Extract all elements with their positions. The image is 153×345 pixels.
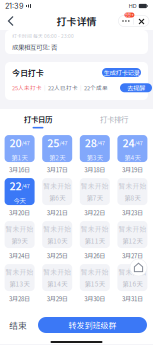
staticText: 生成打卡记录 bbox=[103, 68, 139, 77]
staticText: 22个成果 bbox=[84, 84, 108, 92]
staticText: 3月19日 bbox=[122, 165, 143, 174]
staticText: 99+ bbox=[125, 12, 134, 18]
button[interactable]: 20 bbox=[5, 139, 35, 178]
button[interactable]: 暂未开始 bbox=[5, 225, 35, 264]
staticText: 22 bbox=[10, 178, 22, 193]
button[interactable]: 25 bbox=[42, 139, 72, 178]
staticText: 结束 bbox=[9, 319, 27, 331]
staticText: 暂未开始 bbox=[6, 267, 34, 277]
staticText: 第12天 bbox=[122, 236, 142, 245]
staticText: 3月25日 bbox=[47, 251, 68, 260]
staticText: 3月27日 bbox=[122, 251, 143, 260]
staticText: 打卡日历 bbox=[24, 113, 52, 124]
button[interactable]: 去提醒 bbox=[120, 83, 152, 92]
staticText: 第16天 bbox=[122, 279, 142, 288]
staticText: /47 bbox=[59, 138, 67, 147]
staticText: 3月21日 bbox=[47, 208, 68, 217]
staticText: 3月23日 bbox=[122, 208, 143, 217]
staticText: 第10天 bbox=[47, 236, 67, 245]
staticText: 第11天 bbox=[85, 236, 105, 245]
staticText: 22人已打卡 bbox=[48, 84, 78, 92]
button[interactable]: 生成打卡记录 bbox=[102, 68, 141, 77]
staticText: 20 bbox=[10, 135, 22, 150]
button[interactable]: 暂未开始 bbox=[80, 268, 110, 307]
staticText: 暂未开始 bbox=[118, 181, 146, 191]
staticText: /47 bbox=[22, 181, 30, 190]
staticText: 第1天 bbox=[12, 153, 28, 162]
staticText: /47 bbox=[22, 138, 30, 147]
staticText: 暂未开始 bbox=[6, 224, 34, 234]
staticText: 3月29日 bbox=[47, 294, 68, 303]
staticText: 暂未开始 bbox=[81, 224, 109, 234]
button[interactable]: 打卡排行 bbox=[76, 109, 152, 128]
staticText: 暂未开始 bbox=[118, 267, 146, 277]
staticText: 24 bbox=[122, 135, 134, 150]
staticText: 21:39 bbox=[5, 2, 24, 10]
staticText: 3月28日 bbox=[9, 294, 30, 303]
staticText: 第15天 bbox=[85, 279, 105, 288]
staticText: 第4天 bbox=[124, 153, 140, 162]
button[interactable]: Close bbox=[134, 15, 149, 26]
staticText: 打卡排行 bbox=[100, 113, 128, 124]
staticText: 3月26日 bbox=[84, 251, 105, 260]
button[interactable]: 暂未开始 bbox=[5, 268, 35, 307]
button[interactable]: 暂未开始 bbox=[42, 268, 72, 307]
staticText: HD bbox=[129, 3, 137, 9]
staticText: 3月30日 bbox=[84, 294, 105, 303]
button[interactable]: 转发到班级群 bbox=[38, 317, 147, 333]
staticText: 3月31日 bbox=[122, 294, 143, 303]
staticText: 今日打卡 bbox=[12, 67, 44, 78]
staticText: /47 bbox=[97, 138, 105, 147]
staticText: 成果相互可见: 否 bbox=[12, 42, 57, 52]
staticText: 暂未开始 bbox=[43, 224, 71, 234]
staticText: 暂未开始 bbox=[81, 181, 109, 191]
staticText: | bbox=[44, 84, 46, 92]
staticText: 暂未开始 bbox=[118, 224, 146, 234]
staticText: 3月16日 bbox=[9, 165, 30, 174]
staticText: 去提醒 bbox=[127, 83, 145, 92]
staticText: | bbox=[80, 84, 82, 92]
staticText: 转发到班级群 bbox=[68, 319, 116, 331]
staticText: 3月17日 bbox=[47, 165, 68, 174]
staticText: 25人未打卡 bbox=[12, 84, 42, 92]
staticText: 暂未开始 bbox=[43, 181, 71, 191]
button[interactable]: 暂未开始 bbox=[117, 182, 147, 221]
button[interactable]: More bbox=[118, 15, 133, 26]
staticText: 第6天 bbox=[49, 193, 65, 202]
staticText: 3月22日 bbox=[84, 208, 105, 217]
staticText: 暂未开始 bbox=[43, 267, 71, 277]
button[interactable]: Back to top bbox=[130, 259, 147, 276]
button[interactable]: 22 bbox=[5, 182, 35, 221]
staticText: 3月24日 bbox=[9, 251, 30, 260]
button[interactable]: 结束 bbox=[6, 317, 30, 333]
button[interactable]: Back bbox=[4, 13, 18, 29]
staticText: 25 bbox=[47, 135, 59, 150]
button[interactable]: 暂未开始 bbox=[80, 182, 110, 221]
button[interactable]: 暂未开始 bbox=[117, 225, 147, 264]
staticText: 第8天 bbox=[124, 193, 140, 202]
staticText: 3月20日 bbox=[9, 208, 30, 217]
staticText: 第13天 bbox=[10, 279, 30, 288]
staticText: 第9天 bbox=[12, 236, 28, 245]
staticText: 今天 bbox=[14, 196, 26, 205]
staticText: 打卡详情 bbox=[56, 14, 96, 28]
button[interactable]: 打卡日历 bbox=[0, 109, 76, 128]
button[interactable]: 28 bbox=[80, 139, 110, 178]
staticText: 暂未开始 bbox=[81, 267, 109, 277]
button[interactable]: 暂未开始 bbox=[80, 225, 110, 264]
button[interactable]: 24 bbox=[117, 139, 147, 178]
button[interactable]: 暂未开始 bbox=[42, 182, 72, 221]
staticText: 28 bbox=[85, 135, 97, 150]
staticText: 第7天 bbox=[87, 193, 103, 202]
staticText: 打卡时间 每天 06:00 - 23:00 bbox=[12, 32, 74, 39]
button[interactable]: 暂未开始 bbox=[42, 225, 72, 264]
staticText: 3月18日 bbox=[84, 165, 105, 174]
button[interactable]: 暂未开始 bbox=[117, 268, 147, 307]
staticText: 第3天 bbox=[87, 153, 103, 162]
staticText: /47 bbox=[134, 138, 142, 147]
staticText: 第2天 bbox=[49, 153, 65, 162]
staticText: 第14天 bbox=[47, 279, 67, 288]
